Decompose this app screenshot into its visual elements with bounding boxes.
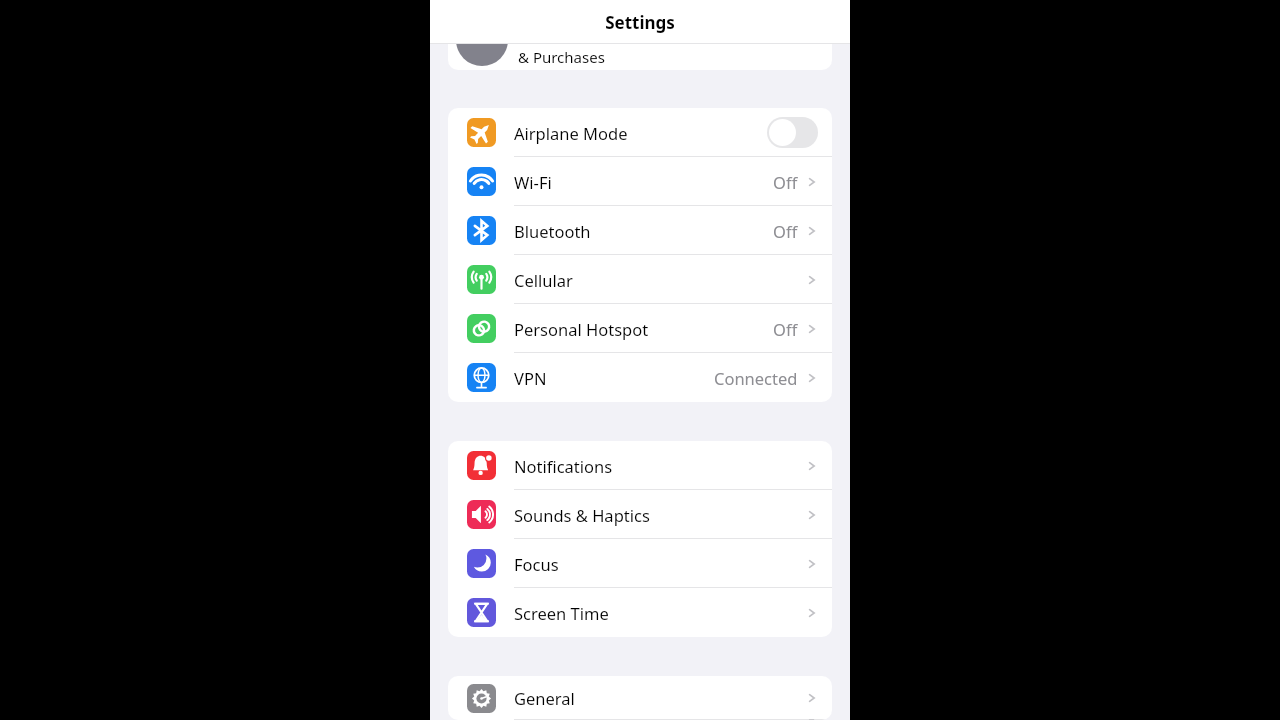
- staticText: Personal Hotspot: [514, 318, 773, 340]
- staticText: VPN: [514, 367, 714, 389]
- staticText: & Purchases: [518, 47, 605, 67]
- button[interactable]: Airplane Mode toggle: [767, 117, 818, 148]
- staticText: Bluetooth: [514, 220, 773, 242]
- staticText: Notifications: [514, 455, 806, 477]
- button[interactable]: Personal Hotspot: [448, 304, 832, 353]
- button[interactable]: Focus: [448, 539, 832, 588]
- button[interactable]: Screen Time: [448, 588, 832, 637]
- button[interactable]: Notifications: [448, 441, 832, 490]
- button[interactable]: Wi-Fi: [448, 157, 832, 206]
- staticText: Off: [773, 318, 798, 340]
- button[interactable]: General: [448, 676, 832, 720]
- staticText: General: [514, 687, 806, 709]
- staticText: Sounds & Haptics: [514, 504, 806, 526]
- button[interactable]: Sounds & Haptics: [448, 490, 832, 539]
- staticText: Settings: [605, 11, 675, 34]
- staticText: Connected: [714, 367, 798, 389]
- staticText: Focus: [514, 553, 806, 575]
- button[interactable]: VPN: [448, 353, 832, 402]
- staticText: Cellular: [514, 269, 806, 291]
- staticText: Screen Time: [514, 602, 806, 624]
- staticText: Off: [773, 220, 798, 242]
- staticText: Airplane Mode: [514, 122, 767, 144]
- button[interactable]: Airplane Mode: [448, 108, 832, 157]
- button[interactable]: & Purchases: [448, 44, 832, 70]
- staticText: Wi-Fi: [514, 171, 773, 193]
- button[interactable]: Cellular: [448, 255, 832, 304]
- button[interactable]: Bluetooth: [448, 206, 832, 255]
- staticText: Off: [773, 171, 798, 193]
